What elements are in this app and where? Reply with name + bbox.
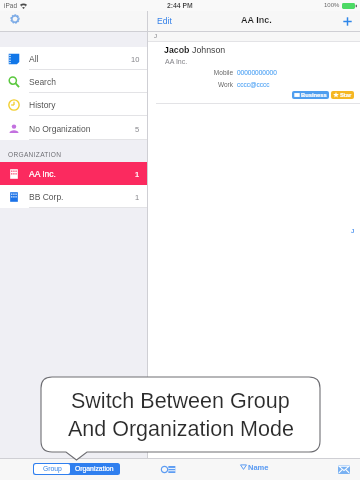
button[interactable]: Add contact — [340, 14, 354, 28]
button[interactable]: No Organization — [0, 117, 148, 140]
staticText: Group — [43, 465, 62, 473]
staticText: Work — [173, 81, 233, 88]
staticText: J — [154, 33, 157, 40]
button[interactable]: Organization — [70, 464, 119, 474]
staticText: Switch Between Group — [71, 389, 290, 413]
staticText: Organization — [75, 465, 114, 473]
button[interactable]: AA Inc. — [0, 162, 148, 185]
button[interactable]: Business — [292, 91, 329, 99]
staticText: iPad — [4, 2, 18, 9]
staticText: AA Inc. — [165, 58, 188, 66]
staticText: 1 — [135, 170, 140, 178]
staticText: J — [351, 228, 355, 235]
staticText: 1 — [135, 193, 140, 201]
staticText: 10 — [131, 55, 140, 63]
staticText: And Organization Mode — [68, 417, 294, 441]
button[interactable]: Group — [34, 464, 70, 474]
staticText: All — [29, 54, 39, 63]
button[interactable]: Settings — [6, 10, 23, 27]
staticText: Johnson — [192, 45, 226, 55]
staticText: 100% — [324, 2, 340, 9]
staticText: AA Inc. — [241, 15, 272, 25]
staticText: Name — [248, 463, 269, 471]
staticText: History — [29, 100, 56, 109]
staticText: Mobile — [173, 69, 233, 76]
button[interactable]: cccc@cccc — [237, 81, 270, 88]
button[interactable]: All — [0, 47, 148, 70]
button[interactable]: Groups — [157, 461, 177, 477]
staticText: ORGANIZATION — [8, 151, 62, 158]
staticText: 2:44 PM — [167, 2, 193, 10]
button[interactable]: Name — [239, 462, 270, 472]
staticText: Jacob — [164, 45, 192, 55]
staticText: Star — [340, 92, 352, 98]
button[interactable]: Star — [331, 91, 354, 99]
staticText: No Organization — [29, 124, 91, 133]
staticText: Search — [29, 77, 56, 86]
staticText: Business — [301, 92, 327, 98]
staticText: AA Inc. — [29, 169, 56, 178]
staticText: BB Corp. — [29, 192, 64, 201]
button[interactable]: History — [0, 93, 148, 116]
button[interactable]: Mail — [334, 461, 354, 477]
button[interactable]: Edit — [148, 14, 178, 28]
staticText: 5 — [135, 125, 140, 133]
button[interactable]: BB Corp. — [0, 185, 148, 208]
button[interactable]: Search — [0, 70, 148, 93]
button[interactable]: 00000000000 — [237, 69, 277, 76]
